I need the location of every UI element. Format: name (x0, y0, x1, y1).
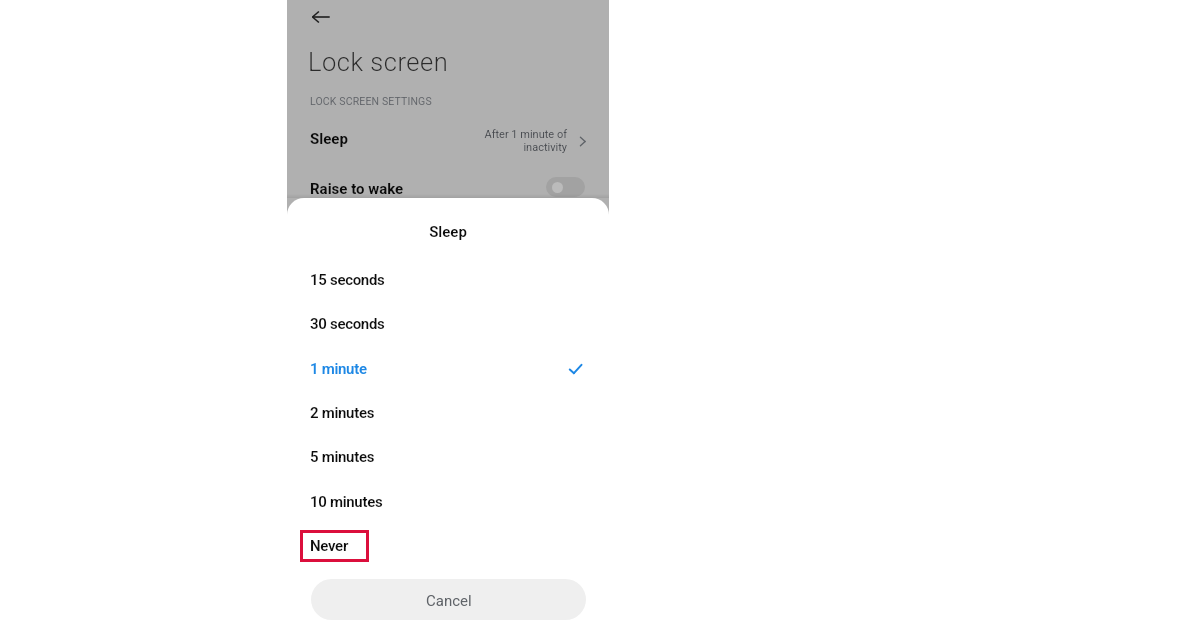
staticText: Never (310, 537, 348, 555)
staticText: Cancel (426, 592, 472, 610)
button[interactable]: Navigate back (305, 1, 337, 33)
button[interactable]: Sleep (287, 120, 609, 162)
staticText: 30 seconds (310, 315, 385, 333)
button[interactable]: 15 seconds (287, 258, 609, 302)
button[interactable]: 1 minute (287, 347, 609, 391)
staticText: 2 minutes (310, 404, 375, 422)
button[interactable]: 5 minutes (287, 435, 609, 479)
button[interactable]: Raise to wake (287, 169, 609, 203)
staticText: Lock screen (308, 47, 449, 77)
staticText: 10 minutes (310, 493, 383, 511)
staticText: LOCK SCREEN SETTINGS (310, 95, 432, 107)
staticText: After 1 minute of inactivity (477, 128, 567, 154)
staticText: Raise to wake (310, 180, 404, 198)
staticText: 5 minutes (310, 448, 375, 466)
button[interactable]: Raise to wake, off (546, 177, 585, 197)
staticText: Sleep (310, 130, 348, 148)
button[interactable]: 10 minutes (287, 480, 609, 524)
button[interactable]: Cancel (311, 579, 586, 620)
staticText: Sleep (287, 223, 609, 241)
button[interactable]: 30 seconds (287, 302, 609, 346)
button[interactable]: Never (287, 524, 609, 568)
staticText: 15 seconds (310, 271, 385, 289)
button[interactable]: 2 minutes (287, 391, 609, 435)
staticText: 1 minute (310, 360, 367, 378)
